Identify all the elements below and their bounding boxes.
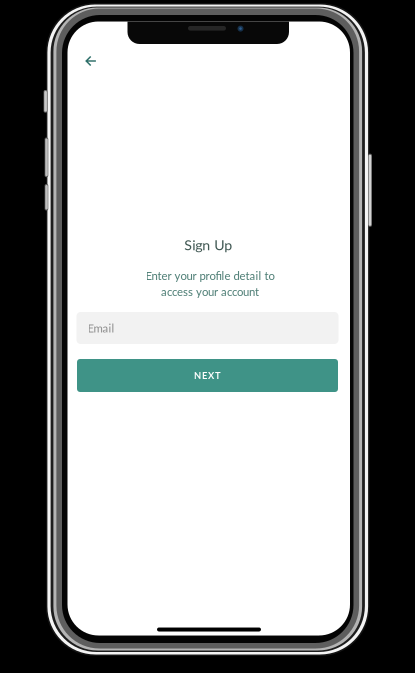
staticText: Sign Up	[184, 236, 232, 253]
button[interactable]: Email	[76, 312, 338, 344]
staticText: N E X T	[194, 370, 221, 381]
staticText: access your account	[161, 285, 259, 298]
button[interactable]: Back	[74, 44, 108, 78]
staticText: Email	[87, 321, 114, 335]
button[interactable]: N E X T	[77, 359, 338, 392]
staticText: Enter your profile detail to	[145, 269, 274, 282]
